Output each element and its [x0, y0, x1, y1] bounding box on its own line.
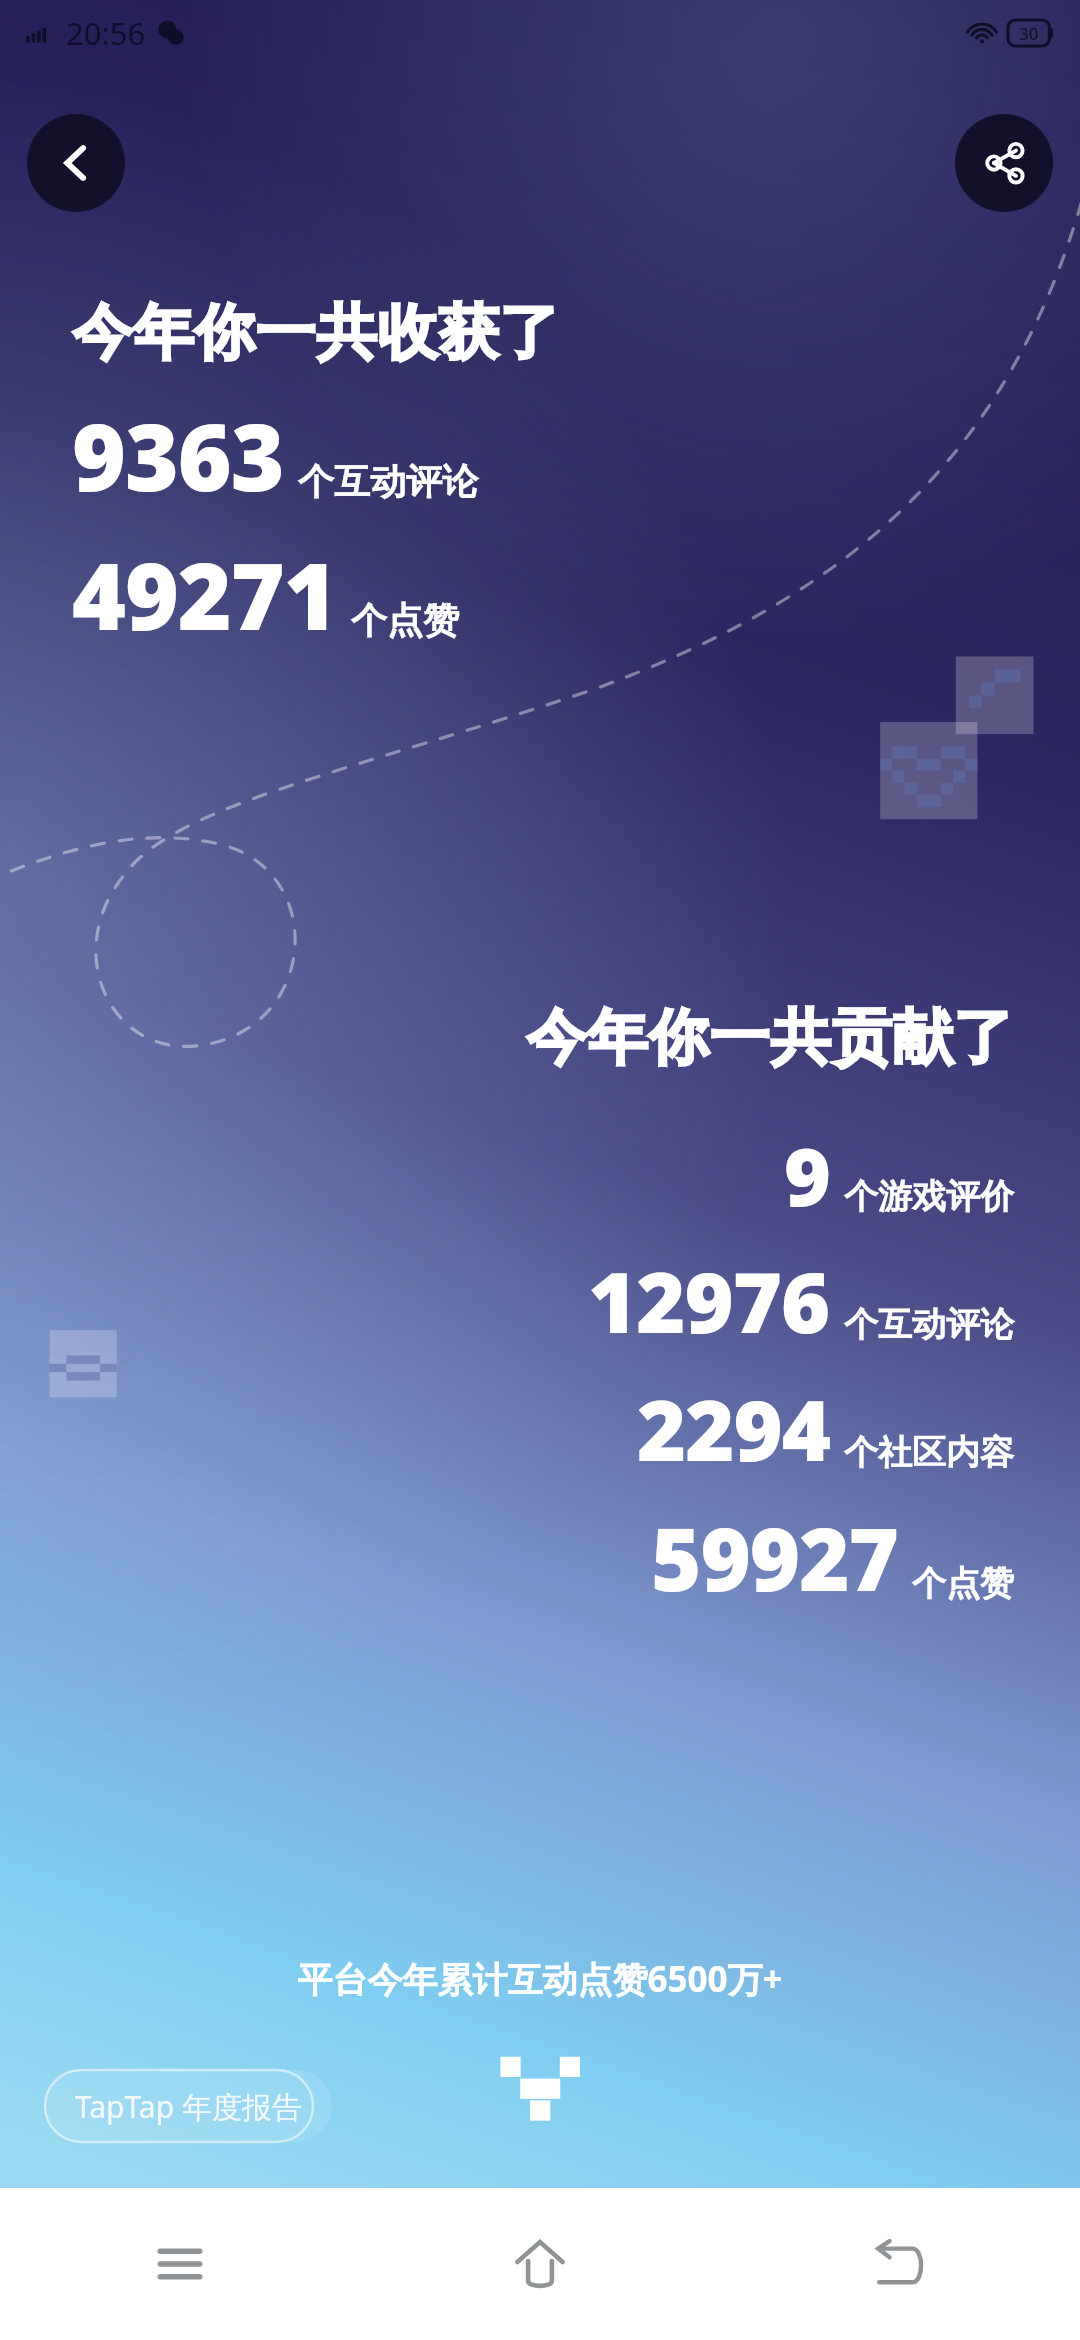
button[interactable]: Home — [360, 2188, 720, 2340]
button[interactable]: Recent apps — [0, 2188, 360, 2340]
staticText: 9363 — [72, 393, 284, 518]
staticText: 个游戏评价 — [844, 1175, 1014, 1218]
staticText: 9 — [784, 1120, 830, 1229]
staticText: TapTap 年度报告 — [75, 2086, 302, 2127]
staticText: 59927 — [651, 1499, 898, 1616]
staticText: 今年你一共贡献了 — [526, 1000, 1014, 1076]
button[interactable]: Share — [955, 114, 1053, 212]
staticText: 今年你一共收获了 — [72, 295, 560, 371]
staticText: 个互动评论 — [844, 1303, 1014, 1346]
staticText: 2294 — [637, 1371, 830, 1485]
staticText: 个互动评论 — [298, 459, 478, 504]
staticText: 49271 — [72, 532, 337, 657]
staticText: 个点赞 — [912, 1562, 1014, 1605]
button[interactable]: Back — [720, 2188, 1080, 2340]
button[interactable]: Back — [27, 114, 125, 212]
button[interactable]: TapTap 年度报告 — [75, 2070, 302, 2142]
staticText: 20:56 — [66, 12, 146, 54]
staticText: 个社区内容 — [844, 1431, 1014, 1474]
staticText: 30 — [1019, 22, 1039, 45]
staticText: 平台今年累计互动点赞6500万+ — [297, 1955, 783, 2003]
staticText: 12976 — [588, 1243, 830, 1357]
staticText: 个点赞 — [351, 598, 459, 643]
